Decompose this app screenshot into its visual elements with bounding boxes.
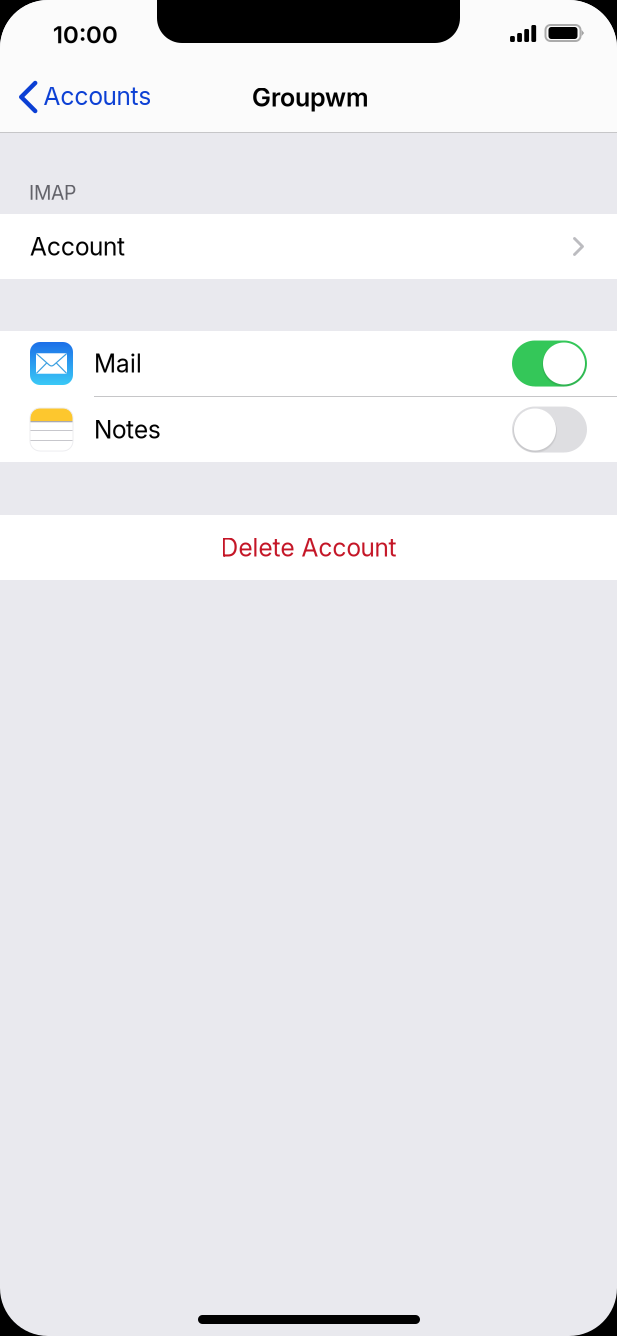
staticText: Accounts bbox=[43, 81, 151, 111]
staticText: Delete Account bbox=[220, 533, 396, 562]
button[interactable]: Mail bbox=[0, 331, 617, 396]
staticText: 10:00 bbox=[53, 20, 118, 49]
button[interactable]: Notes bbox=[0, 397, 617, 462]
button[interactable]: Accounts bbox=[0, 62, 163, 132]
button[interactable]: Account bbox=[0, 214, 617, 279]
staticText: Groupwm bbox=[252, 82, 369, 113]
staticText: Notes bbox=[94, 415, 161, 444]
staticText: Mail bbox=[94, 349, 142, 378]
button[interactable]: Delete Account bbox=[0, 515, 617, 580]
staticText: IMAP bbox=[29, 181, 76, 204]
staticText: Account bbox=[30, 232, 125, 261]
